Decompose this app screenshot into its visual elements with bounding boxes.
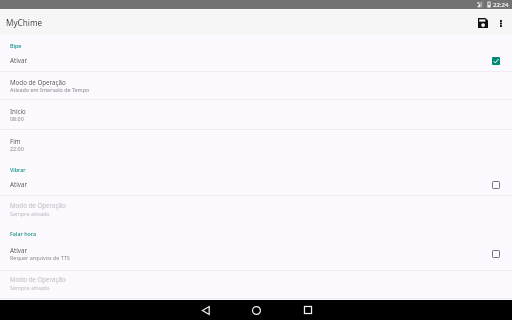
staticText: Modo de Operação	[10, 275, 66, 283]
staticText: Ativar	[10, 56, 27, 64]
button[interactable]: Home	[231, 300, 282, 320]
button[interactable]: Início	[0, 100, 512, 129]
button[interactable]: Modo de Operação	[0, 71, 512, 99]
staticText: 08:00	[10, 115, 24, 122]
staticText: Vibrar	[10, 166, 26, 173]
staticText: MyChime	[6, 17, 43, 28]
button[interactable]: Modo de Operação	[0, 270, 512, 298]
button[interactable]: Ativar	[0, 240, 512, 270]
button[interactable]: Back	[180, 300, 231, 320]
button[interactable]: Ativar	[0, 176, 512, 195]
staticText: Bipe	[10, 42, 22, 49]
button[interactable]: Fim	[0, 130, 512, 158]
staticText: Ativar	[10, 180, 27, 188]
staticText: 22:24	[493, 1, 509, 9]
button[interactable]: Save	[471, 11, 491, 35]
button[interactable]: Recent apps	[282, 300, 333, 320]
staticText: Sempre ativado	[10, 284, 50, 291]
staticText: Requer arquivos de TTS	[10, 254, 70, 261]
staticText: Falar hora	[10, 230, 37, 237]
staticText: Ativar	[10, 246, 27, 254]
staticText: Sempre ativado	[10, 210, 50, 217]
button[interactable]: Ativar	[0, 52, 512, 71]
staticText: Modo de Operação	[10, 201, 66, 209]
button[interactable]: More options	[491, 11, 510, 35]
button[interactable]: Modo de Operação	[0, 196, 512, 224]
staticText: Início	[10, 107, 26, 115]
staticText: Fim	[10, 137, 21, 145]
staticText: Ativado em Intervalo de Tempo	[10, 86, 90, 93]
staticText: Modo de Operação	[10, 78, 66, 86]
staticText: 22:00	[10, 145, 24, 152]
